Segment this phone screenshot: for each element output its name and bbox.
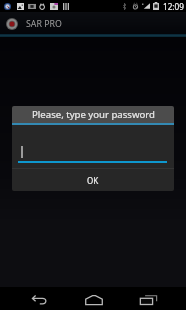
button[interactable]: Recent apps (126, 287, 171, 310)
button[interactable]: OK (12, 169, 174, 191)
staticText: Please, type your password (32, 108, 155, 121)
staticText: SAR PRO (26, 18, 62, 30)
button[interactable]: Back (17, 287, 62, 310)
button[interactable]: Home (71, 287, 116, 310)
staticText: 12:09 (163, 1, 184, 12)
button[interactable]: SAR PRO (0, 12, 186, 37)
staticText: OK (87, 175, 99, 186)
